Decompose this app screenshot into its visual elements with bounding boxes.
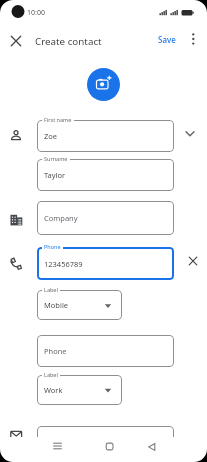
button[interactable] — [87, 68, 120, 101]
button[interactable]: Zoe — [37, 120, 174, 152]
staticText: Zoe — [44, 131, 58, 141]
button[interactable] — [47, 437, 67, 457]
button[interactable] — [142, 437, 162, 457]
button[interactable] — [185, 253, 201, 269]
staticText: Work — [44, 385, 63, 395]
button[interactable] — [99, 437, 119, 457]
button[interactable] — [182, 126, 198, 142]
button[interactable]: Company — [37, 201, 174, 235]
staticText: Phone — [44, 346, 67, 356]
staticText: Label — [44, 286, 58, 293]
staticText: First name — [44, 116, 72, 123]
staticText: 123456789 — [44, 259, 83, 269]
staticText: Surname — [44, 155, 68, 162]
button[interactable]: Taylor — [37, 159, 174, 191]
button[interactable]: Work — [37, 375, 122, 405]
button[interactable]: Mobile — [37, 290, 122, 320]
staticText: Phone — [44, 243, 61, 250]
button[interactable]: 123456789 — [37, 247, 174, 280]
staticText: Company — [44, 213, 78, 223]
button[interactable]: Phone — [37, 335, 174, 367]
staticText: Save — [158, 34, 176, 45]
staticText: Create contact — [35, 35, 102, 48]
button[interactable] — [8, 33, 24, 49]
button[interactable]: Save — [152, 30, 182, 48]
staticText: 10:00 — [27, 8, 45, 18]
staticText: Mobile — [44, 300, 69, 310]
button[interactable] — [37, 426, 174, 452]
button[interactable] — [187, 31, 200, 47]
staticText: Taylor — [44, 170, 66, 180]
staticText: Label — [44, 371, 58, 378]
